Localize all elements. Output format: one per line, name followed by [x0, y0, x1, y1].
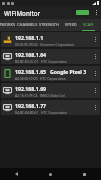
staticText: Sercomm Corporation	[40, 42, 75, 46]
button[interactable]: SCAN	[82, 19, 95, 31]
button[interactable]: Host options	[92, 49, 98, 64]
staticText: A4:5E:60:F2:D5	[15, 76, 38, 80]
button[interactable]: More options	[92, 6, 100, 19]
button[interactable]: 192.168.1.65	[1, 66, 100, 81]
button[interactable]: 192.168.1.77	[1, 100, 100, 115]
staticText: SPEED	[65, 22, 77, 27]
button[interactable]: Scan network	[76, 10, 89, 15]
button[interactable]: Host options	[92, 66, 98, 81]
button[interactable]: NETWORKS	[0, 19, 16, 31]
staticText: A2:1E:31:FF:C4	[15, 93, 38, 97]
staticText: 192.168.1.65	[15, 68, 47, 75]
button[interactable]: STRENGTH	[38, 19, 60, 31]
staticText: 192.168.1.77	[15, 102, 47, 109]
button[interactable]: CHANNELS	[16, 19, 38, 31]
button[interactable]: 192.168.1.69	[1, 83, 100, 98]
staticText: HTC Corporation	[41, 110, 67, 114]
staticText: 192.168.1.69	[15, 85, 47, 92]
button[interactable]: 192.168.1.1	[1, 32, 100, 47]
staticText: 192.168.1.1	[15, 34, 44, 41]
staticText: INNO Globe Ltd	[40, 93, 65, 97]
staticText: HTC Corporation	[40, 76, 66, 80]
button[interactable]: 192.168.1.64	[1, 49, 100, 64]
staticText: Google Pixel 3	[50, 68, 87, 75]
button[interactable]: SPEED	[60, 19, 82, 31]
button[interactable]: Host options	[92, 32, 98, 47]
staticText: HTC Corporation	[41, 59, 67, 63]
staticText: 192.168.1.64	[15, 51, 47, 58]
staticText: NETWORKS	[0, 22, 16, 27]
staticText: STRENGTH	[39, 22, 59, 27]
staticText: CHANNELS	[17, 22, 38, 27]
staticText: B4:BC:84:B2:61	[15, 110, 39, 114]
staticText: B0:BC:83:2C:01	[15, 59, 39, 63]
button[interactable]: Recent apps	[67, 168, 101, 180]
staticText: WiFiMonitor	[4, 9, 41, 17]
staticText: SCAN	[83, 22, 94, 27]
button[interactable]: Back	[0, 168, 33, 180]
button[interactable]: Host options	[92, 83, 98, 98]
button[interactable]: Home	[33, 168, 67, 180]
button[interactable]: Host options	[92, 100, 98, 115]
staticText: 00:25:9C:90:02	[15, 42, 38, 46]
